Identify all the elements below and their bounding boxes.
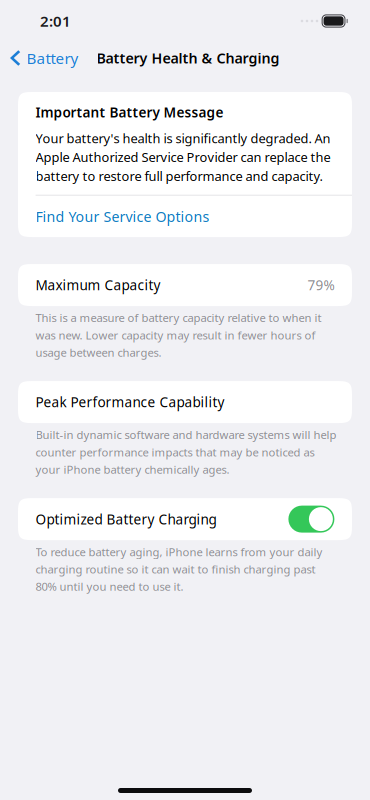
staticText: Important Battery Message [36,103,224,121]
button[interactable]: Optimized Battery Charging [288,506,334,533]
staticText: Your battery's health is significantly d… [36,129,331,185]
staticText: To reduce battery aging, iPhone learns f… [36,544,323,594]
staticText: Built-in dynamic software and hardware s… [36,427,337,477]
staticText: Optimized Battery Charging [36,510,217,528]
staticText: 79% [307,276,334,294]
staticText: This is a measure of battery capacity re… [36,310,322,360]
staticText: Battery [26,48,78,68]
staticText: 2:01 [40,11,71,31]
button[interactable]: Find Your Service Options [18,196,352,237]
staticText: Find Your Service Options [36,207,210,226]
button[interactable]: Battery [0,42,78,74]
staticText: Maximum Capacity [36,276,161,294]
staticText: Peak Performance Capability [36,393,225,411]
staticText: Battery Health & Charging [96,48,279,68]
